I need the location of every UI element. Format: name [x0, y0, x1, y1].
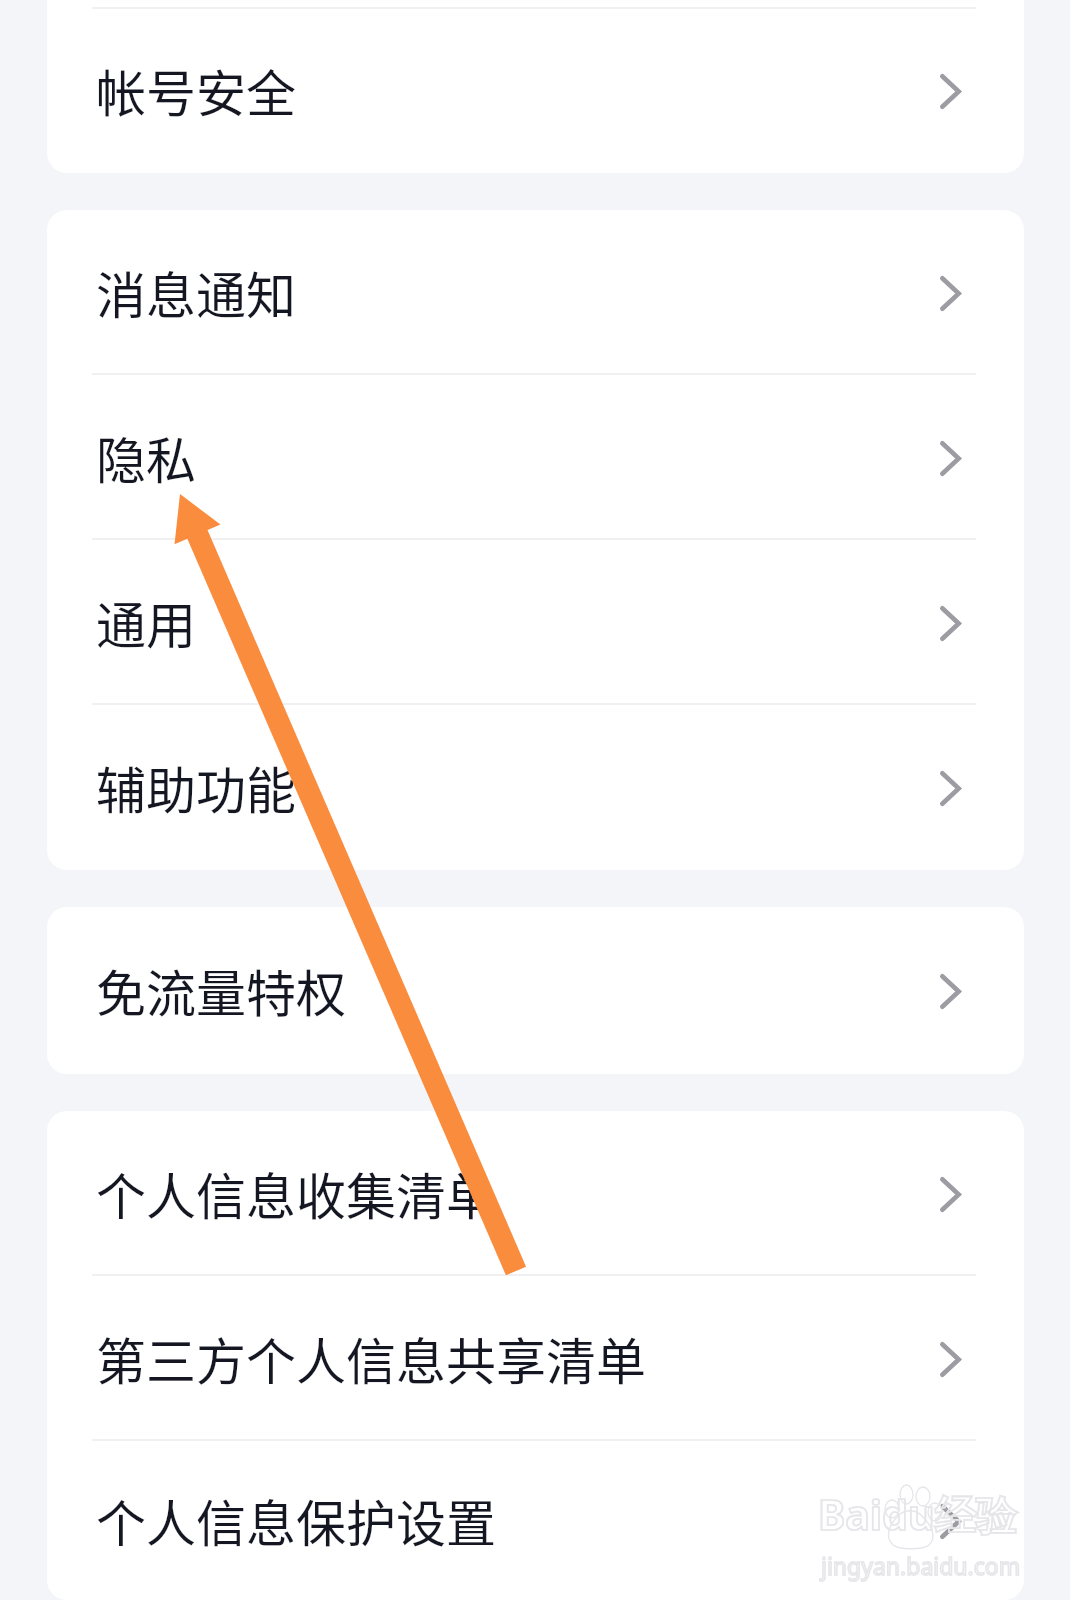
staticText: 第三方个人信息共享清单 — [96, 1322, 646, 1394]
button[interactable]: 辅助功能 — [47, 705, 1024, 870]
staticText: 消息通知 — [96, 256, 296, 328]
other: Open — [918, 1476, 982, 1566]
button[interactable]: 通用 — [47, 540, 1024, 705]
other: Open — [918, 1314, 982, 1404]
staticText: 帐号安全 — [96, 54, 296, 126]
staticText: 个人信息收集清单 — [96, 1157, 496, 1229]
staticText: 辅助功能 — [96, 751, 296, 823]
other: Open — [918, 946, 982, 1036]
staticText: Baidu经验 — [818, 1486, 1017, 1542]
staticText: 免流量特权 — [96, 954, 346, 1026]
other: Open — [918, 46, 982, 136]
other: Open — [918, 1149, 982, 1239]
button[interactable]: 免流量特权 — [47, 907, 1024, 1074]
other: Open — [918, 413, 982, 503]
button[interactable]: 个人信息保护设置 — [47, 1441, 1024, 1600]
button[interactable]: 帐号安全 — [47, 8, 1024, 173]
button[interactable]: 第三方个人信息共享清单 — [47, 1276, 1024, 1441]
other: Open — [918, 743, 982, 833]
button[interactable]: 隐私 — [47, 375, 1024, 540]
other: Open — [918, 578, 982, 668]
button[interactable]: 消息通知 — [47, 210, 1024, 375]
staticText: 通用 — [96, 586, 196, 658]
staticText: 隐私 — [96, 421, 196, 493]
other: Open — [918, 248, 982, 338]
staticText: jingyan.baidu.com — [821, 1550, 1021, 1581]
staticText: 个人信息保护设置 — [96, 1484, 496, 1556]
button[interactable]: 个人信息收集清单 — [47, 1111, 1024, 1276]
